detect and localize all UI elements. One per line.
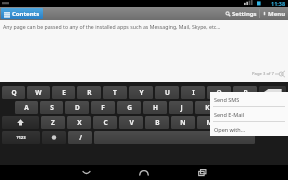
button[interactable]: L	[221, 101, 245, 114]
button[interactable]: N	[171, 116, 195, 129]
button[interactable]: B	[145, 116, 169, 129]
button[interactable]: W	[27, 86, 50, 99]
staticText: Send E-Mail	[214, 111, 245, 118]
button[interactable]: K	[195, 101, 219, 114]
button[interactable]: I	[181, 86, 205, 99]
button[interactable]: Home	[127, 165, 161, 180]
staticText: Contents	[12, 10, 40, 18]
staticText: 11:38	[271, 0, 286, 7]
button[interactable]: E	[52, 86, 75, 99]
button[interactable]: H	[143, 101, 167, 114]
button[interactable]: P	[233, 86, 257, 99]
button[interactable]: Recent apps	[185, 165, 219, 180]
staticText: C	[103, 118, 108, 127]
button[interactable]: O	[207, 86, 231, 99]
staticText: Y	[139, 88, 144, 97]
button[interactable]: Input settings	[42, 131, 66, 144]
staticText: F	[101, 103, 105, 112]
staticText: G	[127, 103, 132, 112]
staticText: W	[35, 88, 42, 97]
button[interactable]: Settings	[223, 8, 259, 19]
staticText: U	[165, 88, 170, 97]
staticText: H	[153, 103, 158, 112]
staticText: /	[79, 133, 82, 142]
button[interactable]: F	[91, 101, 115, 114]
button[interactable]: Shift	[2, 116, 39, 129]
button[interactable]: Z	[41, 116, 65, 129]
button[interactable]: Send E-Mail	[210, 107, 288, 121]
staticText: O	[216, 88, 222, 97]
button[interactable]: Menu	[260, 8, 288, 19]
button[interactable]: U	[155, 86, 179, 99]
staticText: E	[62, 88, 66, 97]
button[interactable]	[94, 131, 255, 144]
staticText: A	[24, 103, 29, 112]
staticText: R	[87, 88, 92, 97]
staticText: D	[75, 103, 80, 112]
button[interactable]: Q	[2, 86, 25, 99]
staticText: K	[205, 103, 210, 112]
button[interactable]: S	[40, 101, 63, 114]
staticText: Open with...	[214, 126, 246, 133]
staticText: S	[50, 103, 54, 112]
staticText: I	[192, 88, 195, 97]
staticText: Z	[51, 118, 55, 127]
staticText: N	[180, 118, 186, 127]
staticText: B	[155, 118, 160, 127]
staticText: P	[243, 88, 248, 97]
staticText: ?123	[16, 135, 26, 141]
staticText: T	[113, 88, 117, 97]
button[interactable]: Enter	[247, 101, 286, 114]
staticText: Send SMS	[214, 96, 240, 103]
button[interactable]: Contents	[1, 8, 43, 19]
button[interactable]: ?123	[2, 131, 40, 144]
staticText: Q	[11, 88, 17, 97]
button[interactable]: D	[65, 101, 89, 114]
staticText: M	[206, 118, 213, 127]
staticText: X	[77, 118, 82, 127]
staticText: Settings	[232, 10, 257, 18]
button[interactable]: V	[119, 116, 143, 129]
staticText: Page 3 of 7	[252, 71, 274, 77]
button[interactable]: X	[67, 116, 91, 129]
button[interactable]: R	[77, 86, 101, 99]
staticText: L	[231, 103, 235, 112]
staticText: Menu	[268, 10, 286, 18]
staticText: Any page can be passed to any of the ins…	[3, 23, 221, 30]
button[interactable]: C	[93, 116, 117, 129]
button[interactable]: Open with...	[210, 122, 288, 136]
button[interactable]: G	[117, 101, 141, 114]
button[interactable]: Back	[69, 165, 103, 180]
staticText: J	[180, 103, 183, 112]
button[interactable]: T	[103, 86, 127, 99]
button[interactable]: M	[197, 116, 221, 129]
button[interactable]: Send SMS	[210, 92, 288, 106]
button[interactable]: /	[68, 131, 92, 144]
button[interactable]: A	[15, 101, 38, 114]
staticText: V	[129, 118, 134, 127]
button[interactable]: J	[169, 101, 193, 114]
button[interactable]: Backspace	[259, 86, 286, 99]
button[interactable]: Y	[129, 86, 153, 99]
